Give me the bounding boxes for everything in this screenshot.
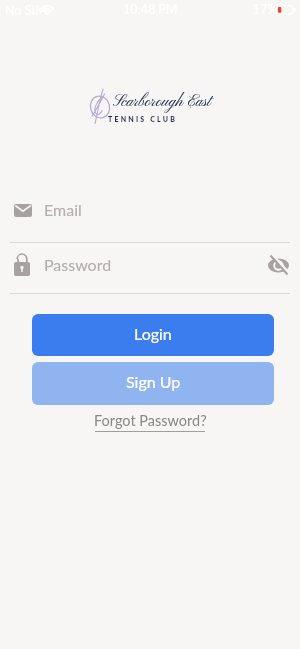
staticText: Sign Up <box>126 372 181 391</box>
staticText: 17% <box>253 2 278 17</box>
staticText: Password <box>44 255 112 274</box>
staticText: Forgot Password? <box>94 412 207 429</box>
staticText: Scarborough East <box>113 92 211 112</box>
staticText: 10:48 PM <box>123 2 178 17</box>
button[interactable]: Sign Up <box>32 362 274 405</box>
button[interactable] <box>267 255 290 278</box>
button[interactable]: Forgot Password? <box>94 412 207 429</box>
staticText: TENNIS CLUB <box>108 115 178 123</box>
staticText: Login <box>134 324 172 343</box>
staticText: No SIM <box>5 3 47 18</box>
staticText: Scarborough East <box>113 92 211 112</box>
button[interactable]: Login <box>32 314 274 356</box>
staticText: Email <box>44 200 82 219</box>
